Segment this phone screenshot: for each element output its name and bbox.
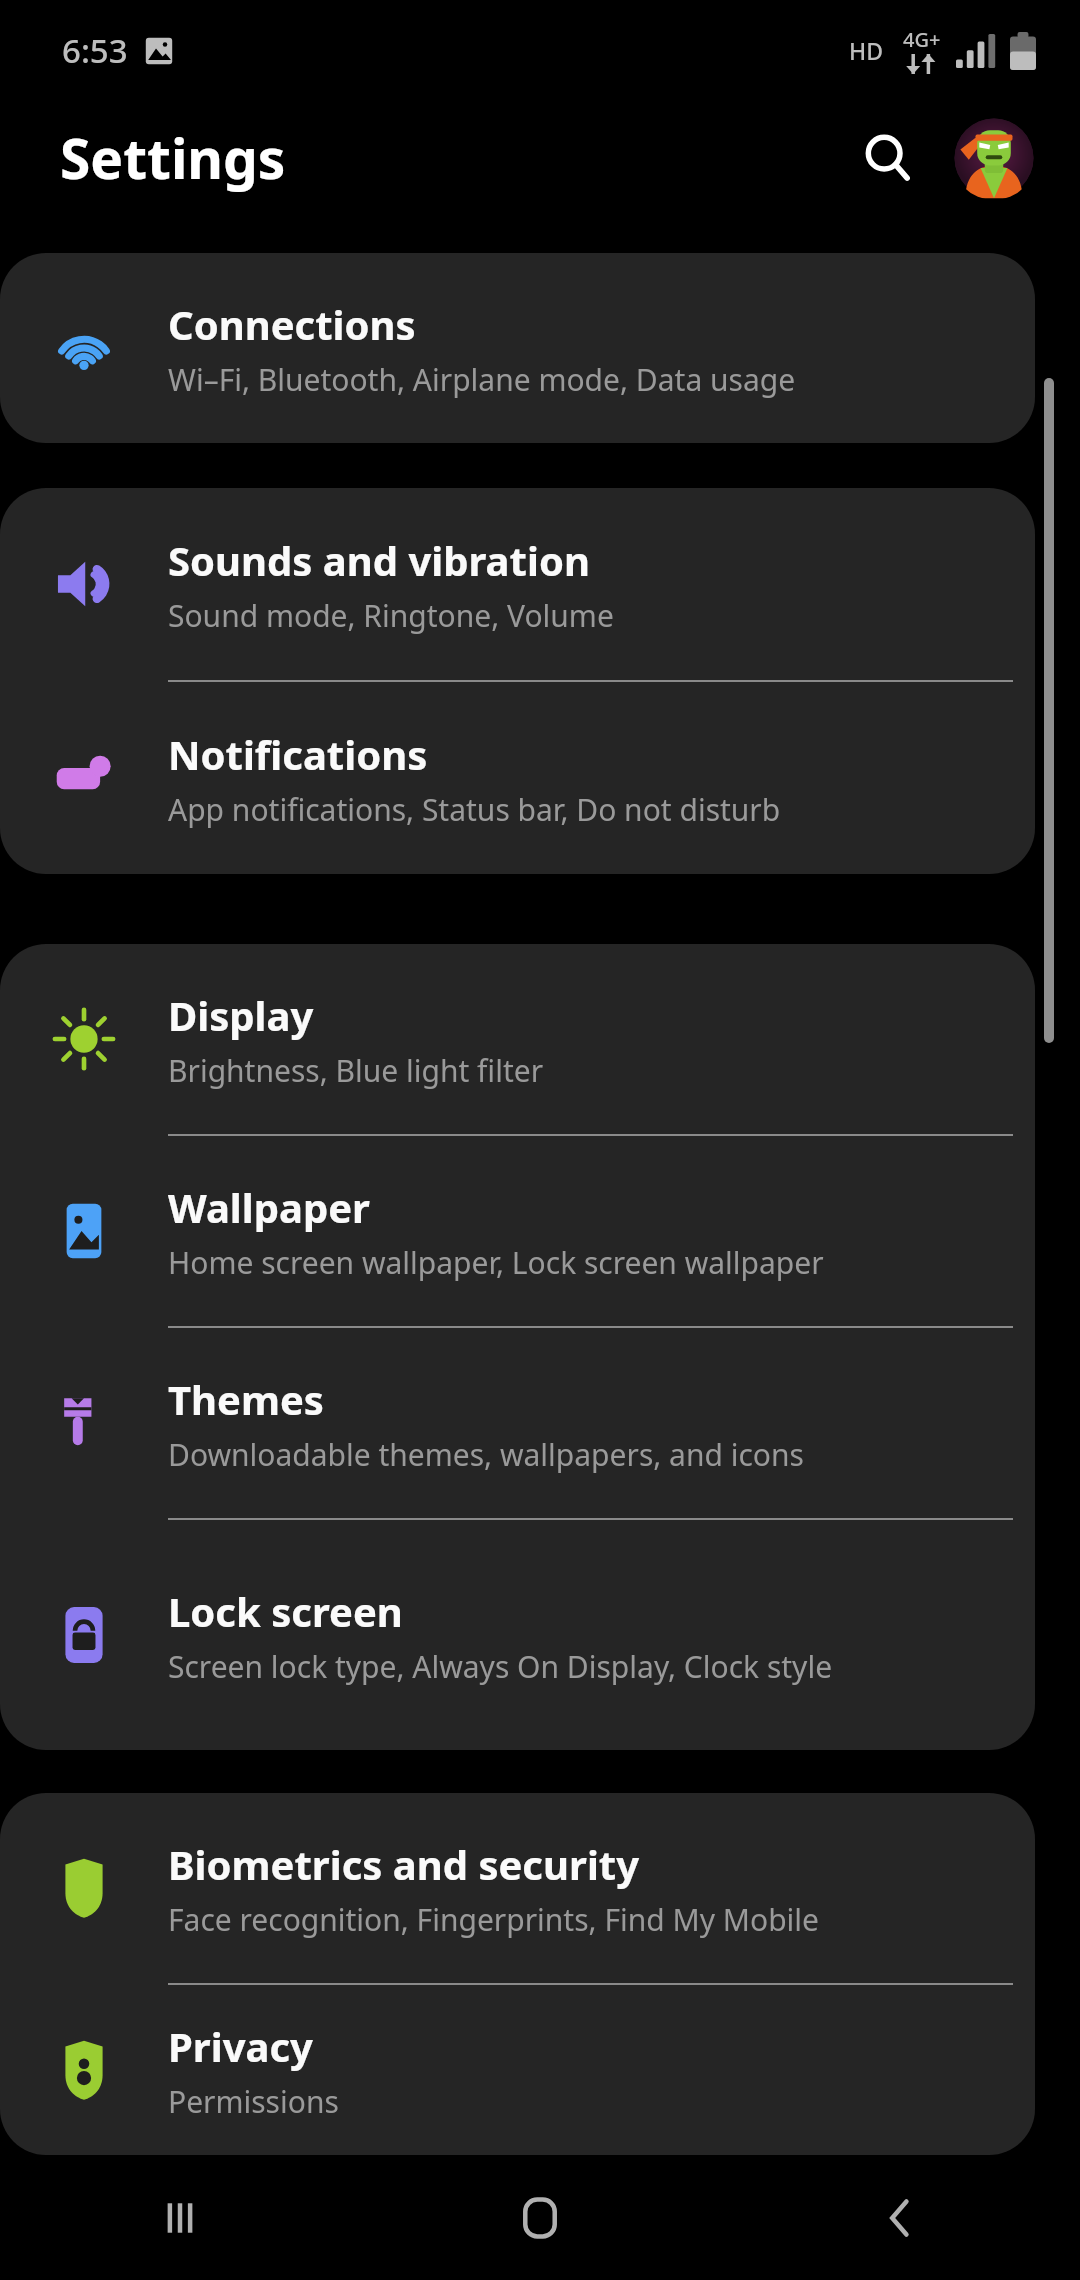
button[interactable]: Privacy <box>0 1985 1035 2155</box>
button[interactable]: Search <box>846 116 930 200</box>
staticText: Settings <box>60 120 286 195</box>
staticText: Home screen wallpaper, Lock screen wallp… <box>168 1242 824 1283</box>
staticText: 6:53 <box>62 28 128 73</box>
staticText: Lock screen <box>168 1584 403 1638</box>
button[interactable]: Connections <box>0 253 1035 443</box>
staticText: Privacy <box>168 2019 313 2073</box>
staticText: Wallpaper <box>168 1180 370 1234</box>
staticText: Downloadable themes, wallpapers, and ico… <box>168 1434 804 1475</box>
button[interactable]: Themes <box>0 1328 1035 1518</box>
staticText: 4G+ <box>903 26 941 53</box>
button[interactable]: Display <box>0 944 1035 1134</box>
staticText: Display <box>168 988 314 1042</box>
button[interactable]: Wallpaper <box>0 1136 1035 1326</box>
staticText: Notifications <box>168 727 428 781</box>
button[interactable]: Home <box>360 2155 720 2280</box>
button[interactable]: Biometrics and security <box>0 1793 1035 1983</box>
staticText: App notifications, Status bar, Do not di… <box>168 789 781 830</box>
staticText: Permissions <box>168 2081 339 2122</box>
button[interactable]: Recents <box>0 2155 360 2280</box>
button[interactable]: Lock screen <box>0 1520 1035 1750</box>
staticText: HD <box>849 35 884 66</box>
staticText: Sounds and vibration <box>168 533 590 587</box>
staticText: Wi–Fi, Bluetooth, Airplane mode, Data us… <box>168 359 796 400</box>
staticText: Themes <box>168 1372 324 1426</box>
button[interactable]: Profile <box>952 116 1036 200</box>
staticText: Sound mode, Ringtone, Volume <box>168 595 614 636</box>
button[interactable]: Sounds and vibration <box>0 488 1035 680</box>
staticText: Face recognition, Fingerprints, Find My … <box>168 1899 819 1940</box>
staticText: Biometrics and security <box>168 1837 640 1891</box>
staticText: Screen lock type, Always On Display, Clo… <box>168 1646 833 1687</box>
button[interactable]: Notifications <box>0 682 1035 874</box>
button[interactable]: Back <box>720 2155 1080 2280</box>
staticText: Brightness, Blue light filter <box>168 1050 544 1091</box>
staticText: Connections <box>168 297 416 351</box>
